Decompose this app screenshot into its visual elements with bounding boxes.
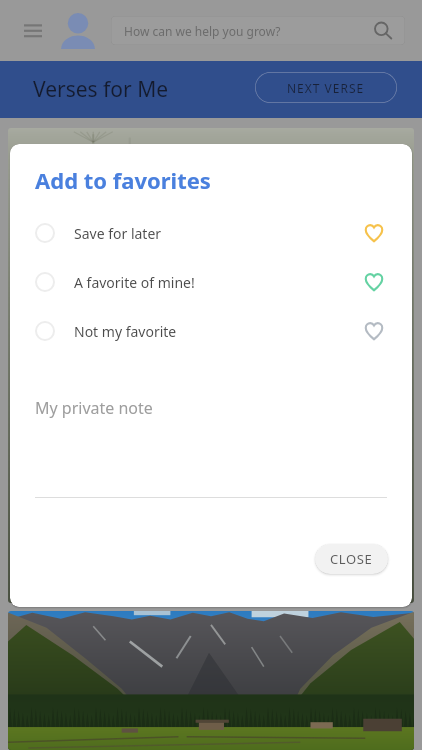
button[interactable]: Open navigation menu xyxy=(19,16,47,46)
button[interactable]: Account xyxy=(59,11,97,49)
button[interactable]: A favorite of mine! xyxy=(10,258,412,306)
staticText: How can we help you grow? xyxy=(124,23,281,39)
staticText: Verses for Me xyxy=(33,75,169,104)
staticText: CLOSE xyxy=(330,550,373,568)
button[interactable]: How can we help you grow? xyxy=(111,16,405,45)
button[interactable]: Save for later xyxy=(10,209,412,257)
button[interactable]: Not my favorite xyxy=(10,307,412,355)
staticText: Not my favorite xyxy=(74,322,177,341)
staticText: NEXT VERSE xyxy=(287,80,365,96)
staticText: A favorite of mine! xyxy=(74,273,195,292)
button[interactable]: NEXT VERSE xyxy=(255,72,397,103)
staticText: Save for later xyxy=(74,224,162,243)
button[interactable]: CLOSE xyxy=(315,544,388,574)
staticText: My private note xyxy=(35,397,153,419)
staticText: Add to favorites xyxy=(35,165,211,195)
